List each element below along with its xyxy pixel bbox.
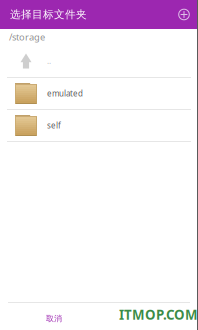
- staticText: ITMOP.COM: [119, 306, 198, 323]
- staticText: 选择目标文件夹: [10, 8, 87, 21]
- button[interactable]: 取消: [33, 307, 75, 329]
- button[interactable]: ..: [0, 45, 198, 77]
- staticText: ..: [47, 56, 51, 66]
- button[interactable]: emulated: [0, 78, 198, 109]
- button[interactable]: self: [0, 110, 198, 141]
- button[interactable]: New folder: [171, 0, 197, 29]
- staticText: /storage: [9, 31, 45, 43]
- staticText: 取消: [46, 314, 62, 323]
- staticText: self: [47, 120, 61, 131]
- staticText: emulated: [47, 88, 83, 99]
